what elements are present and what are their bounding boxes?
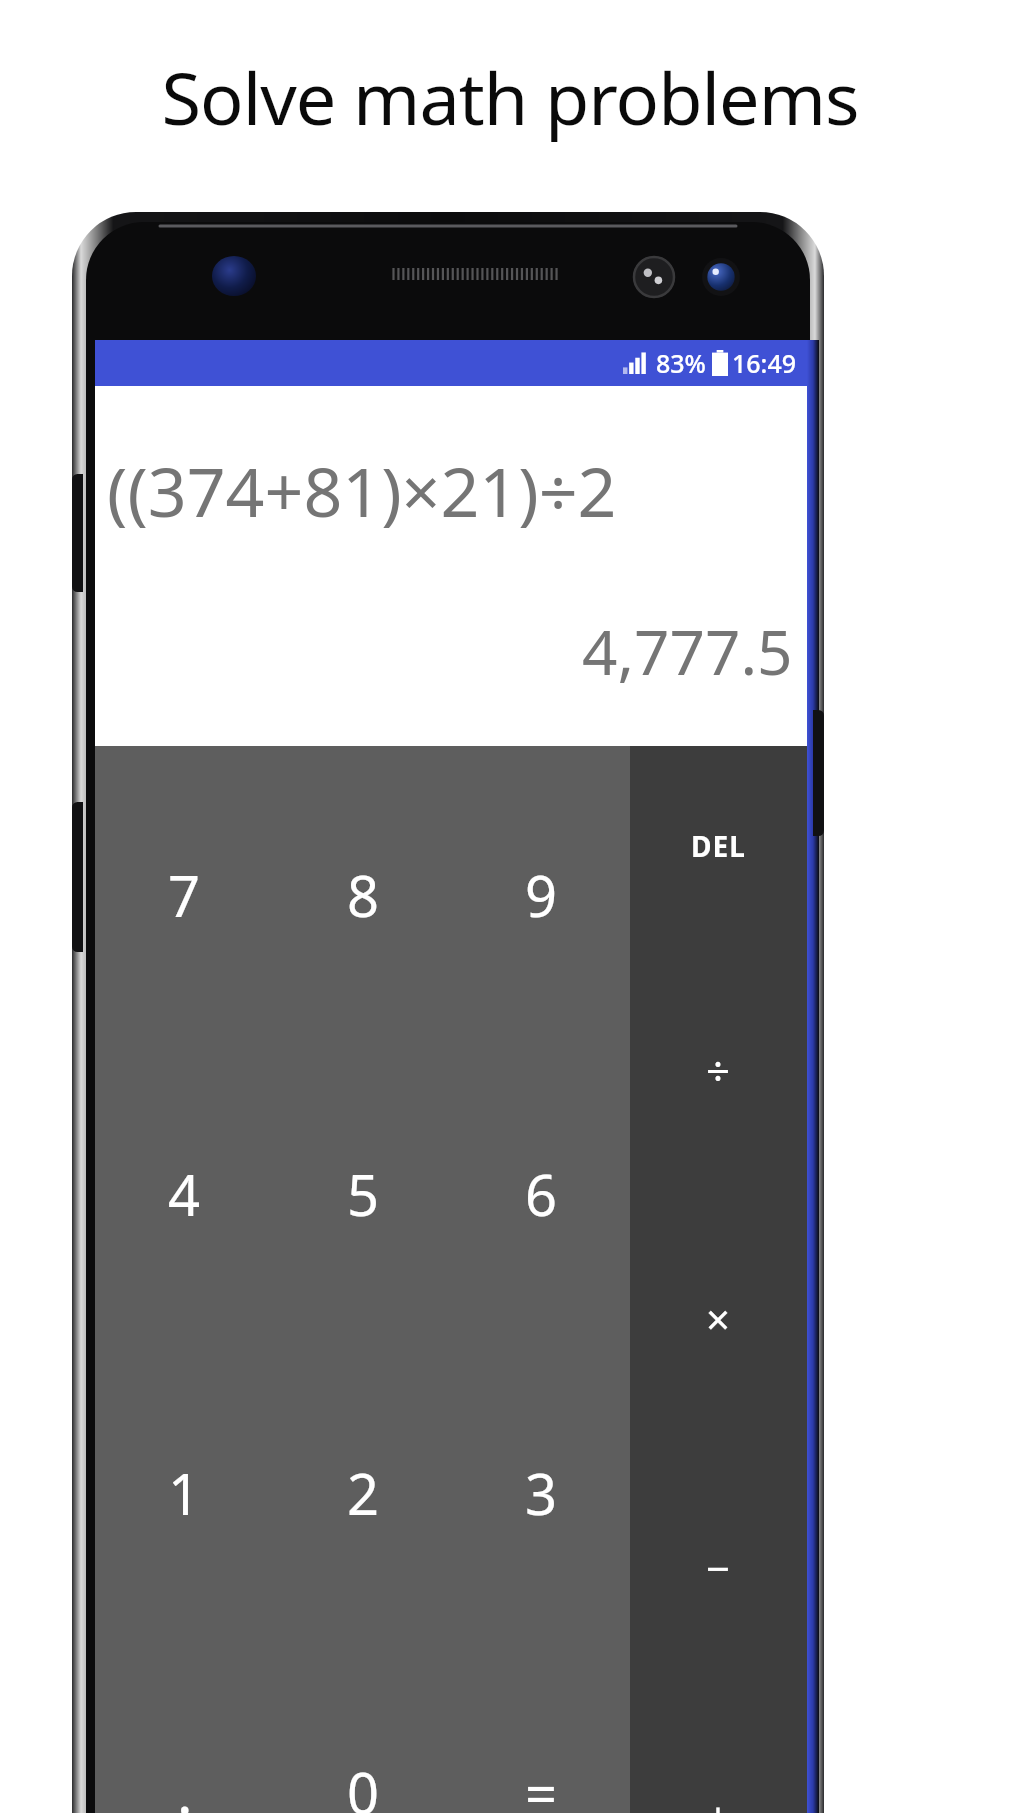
staticText: 7 — [168, 857, 201, 933]
button[interactable]: Delete — [630, 746, 807, 945]
staticText: 16:49 — [732, 346, 797, 380]
button[interactable]: Digit 8 — [274, 746, 452, 1044]
staticText: 83% — [656, 346, 706, 380]
button[interactable]: Equals — [452, 1642, 630, 1813]
staticText: = — [525, 1754, 558, 1813]
button[interactable]: Digit 0 — [274, 1642, 452, 1813]
staticText: 9 — [525, 857, 558, 933]
button[interactable]: Digit 7 — [95, 746, 274, 1044]
staticText: . — [177, 1752, 193, 1813]
staticText: 4,777.5 — [582, 609, 793, 693]
button[interactable]: Digit 2 — [274, 1343, 452, 1642]
staticText: 1 — [168, 1455, 201, 1531]
staticText: 0 — [347, 1754, 380, 1813]
button[interactable]: Digit 3 — [452, 1343, 630, 1642]
button[interactable]: Multiply — [630, 1194, 807, 1443]
staticText: − — [706, 1539, 731, 1596]
button[interactable]: Decimal point — [95, 1642, 274, 1813]
button[interactable]: Digit 1 — [95, 1343, 274, 1642]
staticText: 5 — [347, 1156, 380, 1232]
staticText: 6 — [525, 1156, 558, 1232]
button[interactable]: Subtract — [630, 1443, 807, 1692]
staticText: DEL — [691, 827, 746, 865]
staticText: 8 — [347, 857, 380, 933]
button[interactable]: Digit 4 — [95, 1044, 274, 1343]
button[interactable]: Add — [630, 1692, 807, 1813]
staticText: 3 — [525, 1455, 558, 1531]
staticText: 4 — [168, 1156, 201, 1232]
staticText: × — [706, 1290, 731, 1347]
button[interactable]: Digit 5 — [274, 1044, 452, 1343]
button[interactable]: Divide — [630, 945, 807, 1194]
staticText: ((374+81)×21)÷2 — [107, 444, 617, 537]
staticText: + — [706, 1788, 731, 1813]
button[interactable]: Digit 9 — [452, 746, 630, 1044]
staticText: Solve math problems — [0, 48, 1020, 146]
button[interactable]: Digit 6 — [452, 1044, 630, 1343]
staticText: ÷ — [706, 1041, 731, 1098]
staticText: 2 — [347, 1455, 380, 1531]
